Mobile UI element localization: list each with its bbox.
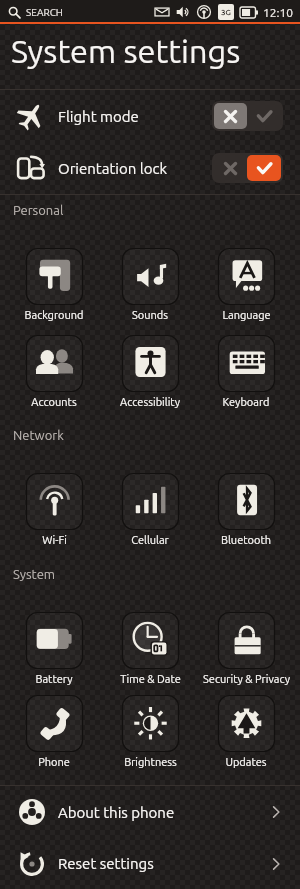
button[interactable]: Reset settings (0, 838, 300, 889)
button[interactable]: Battery (6, 612, 102, 685)
button[interactable]: Accounts (6, 335, 102, 408)
staticText: Flight mode (58, 108, 139, 125)
staticText: Bluetooth (221, 534, 271, 546)
staticText: Reset settings (58, 855, 154, 872)
button[interactable]: Time & Date (102, 612, 198, 685)
staticText: Updates (225, 756, 267, 768)
staticText: System settings (11, 33, 241, 69)
staticText: SEARCH (26, 7, 63, 18)
button[interactable]: Security & Privacy (198, 612, 294, 685)
button[interactable]: On (212, 153, 283, 183)
button[interactable]: About this phone (0, 786, 300, 838)
staticText: Orientation lock (58, 160, 167, 177)
button[interactable]: Keyboard (198, 335, 294, 408)
staticText: Wi-Fi (42, 534, 67, 546)
staticText: Accounts (31, 396, 77, 408)
staticText: Accessibility (120, 396, 180, 408)
button[interactable]: Brightness (102, 695, 198, 768)
button[interactable]: Sounds (102, 248, 198, 321)
staticText: About this phone (58, 804, 175, 821)
button[interactable]: Off (212, 101, 283, 131)
button[interactable]: Flight mode (0, 90, 300, 142)
staticText: Background (24, 309, 84, 321)
staticText: 12:10 (263, 6, 294, 19)
button[interactable]: Wi-Fi (6, 473, 102, 546)
staticText: Cellular (131, 534, 169, 546)
staticText: Battery (35, 673, 73, 685)
staticText: Network (13, 428, 64, 443)
button[interactable]: Bluetooth (198, 473, 294, 546)
button[interactable]: Updates (198, 695, 294, 768)
staticText: Personal (13, 203, 64, 218)
staticText: Brightness (124, 756, 177, 768)
button[interactable]: Cellular (102, 473, 198, 546)
button[interactable]: Background (6, 248, 102, 321)
staticText: Time & Date (120, 673, 181, 685)
staticText: Security & Privacy (203, 673, 290, 685)
staticText: Sounds (132, 309, 168, 321)
button[interactable]: Orientation lock (0, 142, 300, 194)
staticText: Language (222, 309, 271, 321)
button[interactable]: Phone (6, 695, 102, 768)
staticText: System (13, 567, 56, 582)
staticText: Keyboard (222, 396, 270, 408)
staticText: Phone (38, 756, 70, 768)
button[interactable]: Language (198, 248, 294, 321)
staticText: 3G (221, 8, 231, 17)
button[interactable]: Accessibility (102, 335, 198, 408)
